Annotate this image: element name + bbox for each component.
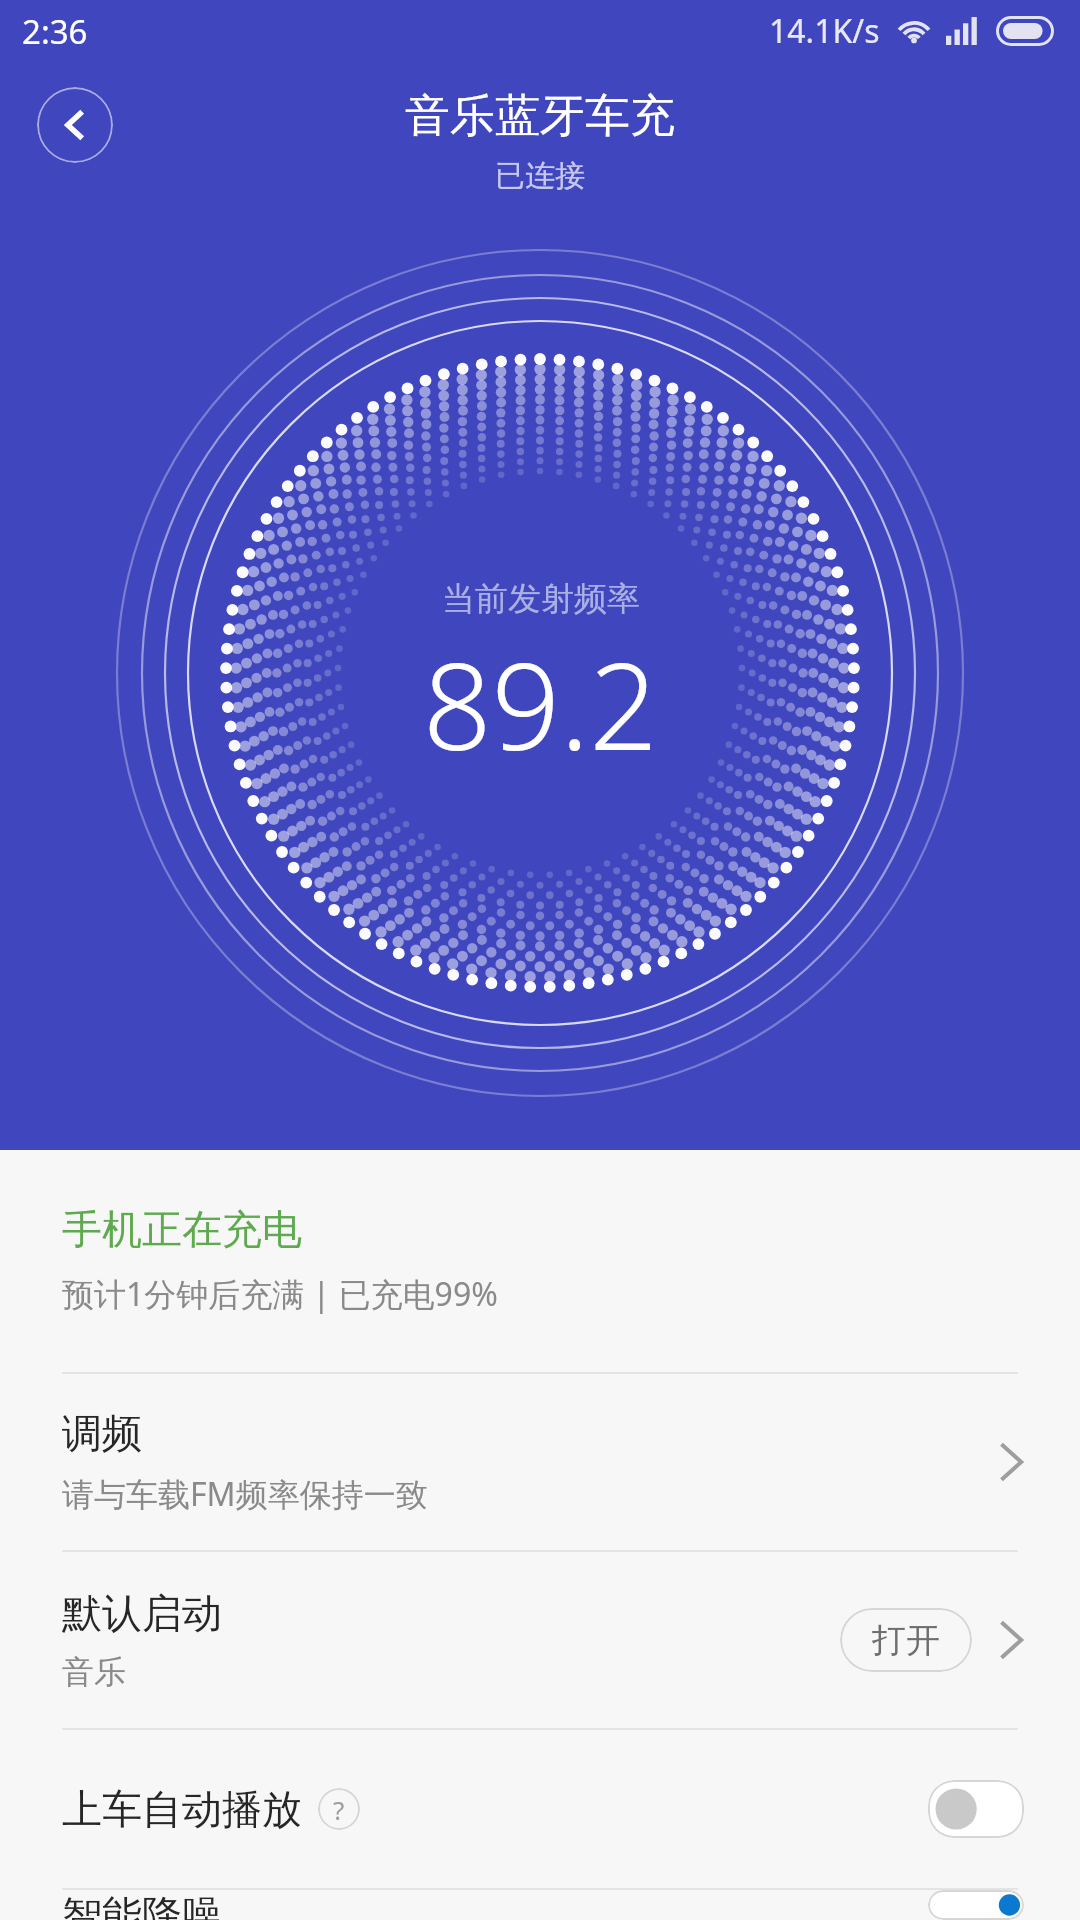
staticText: 预计1分钟后充满 | 已充电99% (62, 1272, 498, 1316)
button[interactable]: 手机正在充电 (0, 1150, 1080, 1316)
staticText: 智能降噪 (62, 1890, 222, 1920)
button[interactable]: 调频 (0, 1374, 1080, 1550)
staticText: 默认启动 (62, 1588, 222, 1638)
staticText: 已连接 (495, 157, 585, 195)
button[interactable]: 上车自动播放 (0, 1730, 1080, 1888)
staticText: 手机正在充电 (62, 1204, 302, 1254)
staticText: 2:36 (22, 9, 88, 54)
staticText: 14.1K/s (769, 9, 880, 53)
button[interactable]: 智能降噪 (0, 1890, 1080, 1920)
staticText: 请与车载FM频率保持一致 (62, 1472, 428, 1516)
button[interactable]: 默认启动 (0, 1552, 1080, 1728)
staticText: 89.2 (423, 622, 658, 785)
button[interactable]: Toggle off (928, 1780, 1024, 1838)
button[interactable]: Help (318, 1788, 360, 1830)
staticText: 调频 (62, 1408, 142, 1458)
staticText: 音乐 (62, 1652, 126, 1692)
staticText: 上车自动播放 (62, 1784, 302, 1834)
button[interactable]: Back (37, 87, 113, 163)
staticText: 当前发射频率 (442, 578, 640, 620)
button[interactable]: Toggle on (928, 1890, 1024, 1920)
staticText: 音乐蓝牙车充 (405, 88, 675, 145)
staticText: ? (333, 1792, 345, 1827)
staticText: 打开 (872, 1619, 940, 1662)
button[interactable]: 打开 (840, 1608, 972, 1672)
